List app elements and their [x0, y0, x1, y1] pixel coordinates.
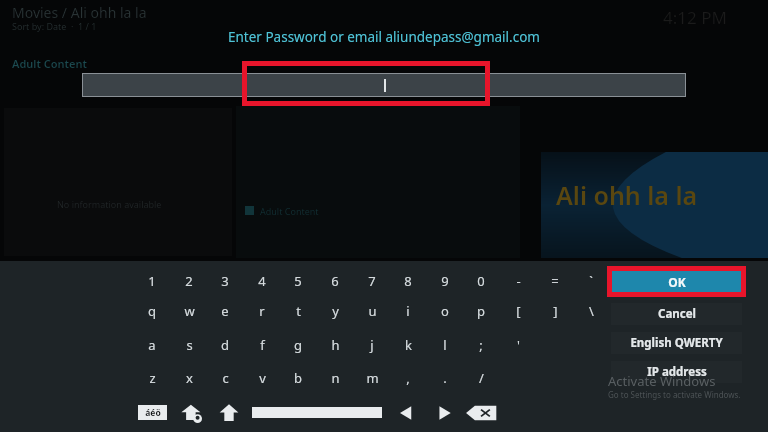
staticText: h [331, 336, 340, 354]
button[interactable]: . [429, 365, 461, 391]
staticText: n [331, 369, 340, 387]
button[interactable]: 9 [429, 268, 461, 294]
staticText: Enter Password or email aliundepass@gmai… [228, 28, 540, 46]
button[interactable]: Special characters [138, 405, 167, 420]
button[interactable] [82, 73, 686, 97]
button[interactable]: Backspace [464, 403, 498, 423]
button[interactable]: s [173, 332, 205, 358]
button[interactable]: 1 [136, 268, 168, 294]
button[interactable]: n [319, 365, 351, 391]
button[interactable]: r [246, 298, 278, 324]
button[interactable]: w [173, 298, 205, 324]
button[interactable]: z [136, 365, 168, 391]
button[interactable]: q [136, 298, 168, 324]
staticText: [ [516, 302, 521, 320]
button[interactable]: Cancel [611, 303, 742, 325]
staticText: 8 [404, 272, 412, 290]
staticText: e [221, 302, 229, 320]
button[interactable]: [ [502, 298, 534, 324]
staticText: b [294, 369, 302, 387]
staticText: a [148, 336, 156, 354]
staticText: \ [589, 302, 594, 320]
button[interactable]: Caps lock [178, 402, 206, 424]
staticText: w [184, 302, 195, 320]
button[interactable]: = [539, 268, 571, 294]
staticText: y [332, 302, 339, 320]
staticText: 4:12 PM [663, 6, 727, 29]
button[interactable]: 6 [319, 268, 351, 294]
button[interactable]: e [209, 298, 241, 324]
button[interactable]: / [465, 365, 497, 391]
button[interactable]: - [502, 268, 534, 294]
staticText: k [405, 336, 412, 354]
button[interactable]: Cursor left [394, 403, 418, 423]
button[interactable]: Shift [216, 402, 242, 424]
staticText: - [516, 272, 521, 290]
button[interactable]: o [429, 298, 461, 324]
staticText: o [441, 302, 449, 320]
button[interactable]: c [209, 365, 241, 391]
staticText: Movies / Ali ohh la la [12, 3, 147, 22]
button[interactable]: g [282, 332, 314, 358]
button[interactable]: 2 [173, 268, 205, 294]
staticText: v [259, 369, 266, 387]
button[interactable]: i [392, 298, 424, 324]
staticText: Cancel [658, 306, 696, 322]
button[interactable]: ' [502, 332, 534, 358]
button[interactable]: 4 [246, 268, 278, 294]
button[interactable]: OK [611, 271, 742, 293]
button[interactable]: 7 [356, 268, 388, 294]
button[interactable]: b [282, 365, 314, 391]
button[interactable]: x [173, 365, 205, 391]
staticText: 7 [368, 272, 376, 290]
staticText: English QWERTY [630, 335, 723, 351]
button[interactable]: j [356, 332, 388, 358]
button[interactable]: ] [539, 298, 571, 324]
staticText: Adult Content [260, 205, 319, 217]
button[interactable]: l [429, 332, 461, 358]
staticText: 1 [148, 272, 156, 290]
staticText: ' [517, 336, 520, 354]
button[interactable]: 5 [282, 268, 314, 294]
button[interactable]: , [392, 365, 424, 391]
button[interactable]: y [319, 298, 351, 324]
button[interactable]: \ [575, 298, 607, 324]
button[interactable]: a [136, 332, 168, 358]
button[interactable]: d [209, 332, 241, 358]
button[interactable]: p [465, 298, 497, 324]
button[interactable]: t [282, 298, 314, 324]
staticText: 0 [477, 272, 485, 290]
staticText: i [406, 302, 410, 320]
staticText: s [186, 336, 193, 354]
button[interactable]: Cursor right [432, 403, 456, 423]
button[interactable]: u [356, 298, 388, 324]
staticText: ; [479, 336, 483, 354]
staticText: u [368, 302, 377, 320]
button[interactable]: h [319, 332, 351, 358]
staticText: 4 [258, 272, 266, 290]
button[interactable]: 3 [209, 268, 241, 294]
staticText: x [186, 369, 193, 387]
button[interactable]: m [356, 365, 388, 391]
button[interactable]: English QWERTY [611, 332, 742, 354]
staticText: Sort by: Date · 1 / 1 [12, 20, 97, 32]
button[interactable]: 8 [392, 268, 424, 294]
button[interactable]: ` [575, 268, 607, 294]
button[interactable]: ; [465, 332, 497, 358]
staticText: c [222, 369, 229, 387]
staticText: 6 [331, 272, 339, 290]
button[interactable]: k [392, 332, 424, 358]
staticText: g [294, 336, 302, 354]
staticText: l [443, 336, 447, 354]
staticText: r [259, 302, 265, 320]
button[interactable]: IP address [611, 361, 742, 383]
staticText: . [443, 369, 447, 387]
button[interactable]: 0 [465, 268, 497, 294]
staticText: 5 [294, 272, 302, 290]
staticText: f [260, 336, 265, 354]
button[interactable]: f [246, 332, 278, 358]
button[interactable]: v [246, 365, 278, 391]
staticText: / [479, 369, 484, 387]
staticText: d [221, 336, 229, 354]
